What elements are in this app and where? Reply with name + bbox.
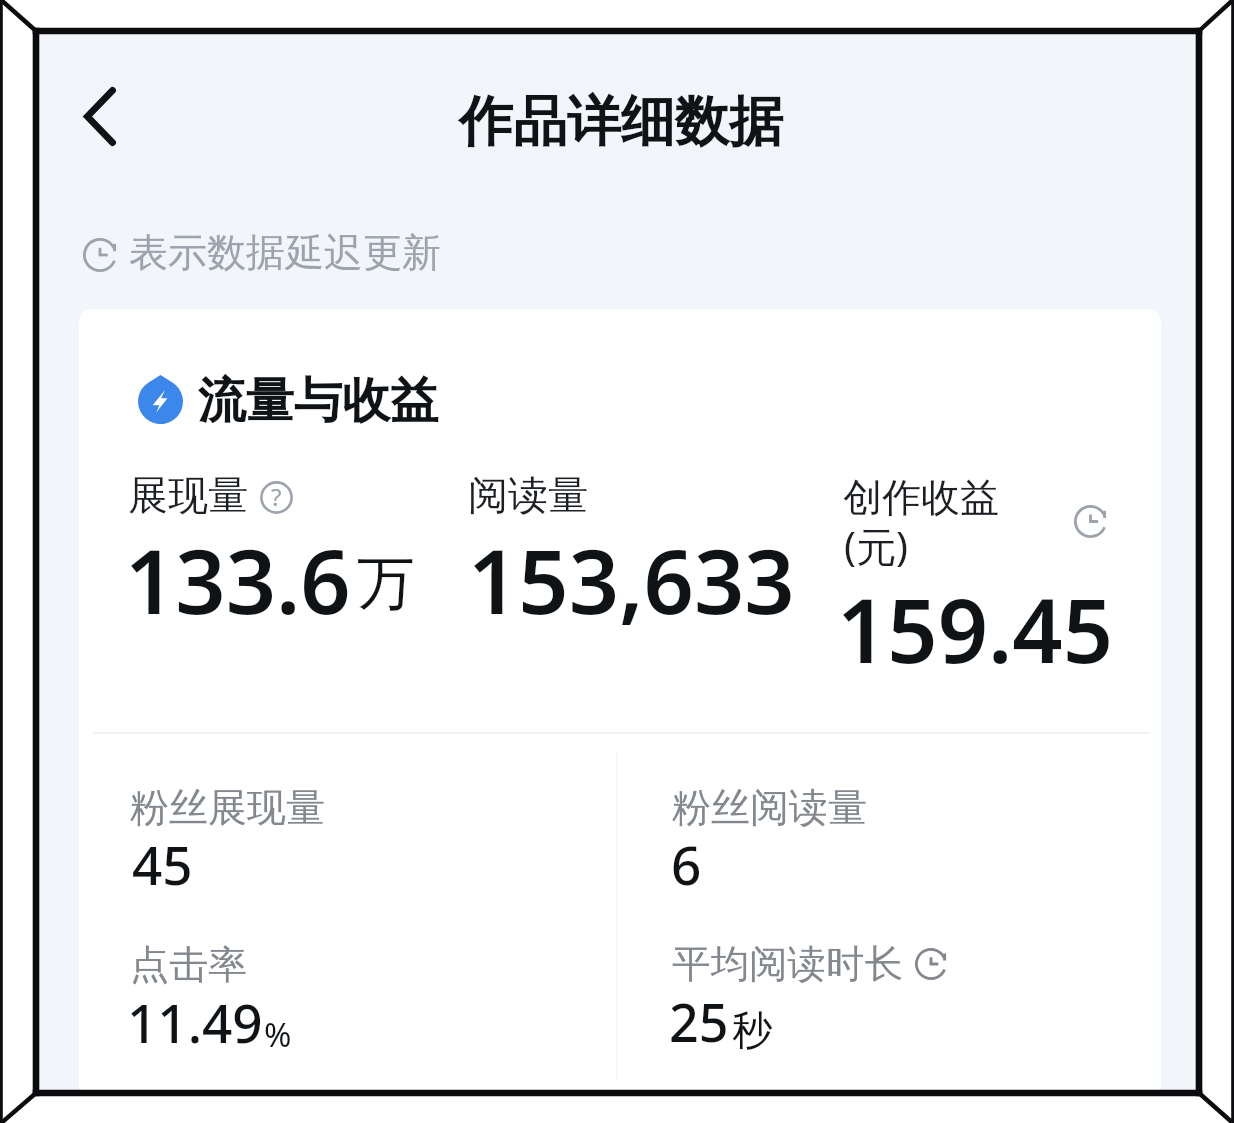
staticText: 159.45 bbox=[837, 569, 1113, 689]
button[interactable]: 粉丝阅读量 6 bbox=[633, 762, 1143, 907]
staticText: 创作收益 bbox=[843, 473, 999, 522]
staticText: 阅读量 bbox=[468, 470, 588, 520]
button[interactable]: 阅读量 153,633 bbox=[440, 460, 820, 630]
staticText: (元) bbox=[844, 518, 908, 573]
staticText: 粉丝展现量 bbox=[130, 783, 325, 832]
button[interactable]: 粉丝展现量 45 bbox=[93, 762, 603, 907]
staticText: % bbox=[264, 1012, 292, 1057]
button[interactable]: 创作收益 159.45 元 bbox=[825, 460, 1145, 675]
staticText: 平均阅读时长 bbox=[672, 940, 903, 989]
staticText: 133.6 bbox=[125, 520, 351, 640]
staticText: 45 bbox=[132, 828, 193, 900]
button[interactable]: 点击率 11.49% bbox=[93, 920, 603, 1065]
staticText: 11.49 bbox=[127, 986, 263, 1058]
staticText: 点击率 bbox=[130, 940, 247, 989]
staticText: ? bbox=[271, 480, 282, 513]
staticText: 153,633 bbox=[468, 520, 795, 640]
staticText: 25 bbox=[669, 986, 729, 1057]
staticText: 秒 bbox=[732, 1005, 772, 1055]
staticText: 作品详细数据 bbox=[459, 88, 783, 156]
button[interactable]: Help bbox=[260, 481, 293, 514]
staticText: 流量与收益 bbox=[198, 371, 438, 431]
button[interactable]: 平均阅读时长 25秒 bbox=[633, 920, 1143, 1065]
staticText: 表示数据延迟更新 bbox=[129, 228, 441, 277]
staticText: 粉丝阅读量 bbox=[672, 783, 867, 832]
staticText: 万 bbox=[357, 547, 415, 620]
staticText: 6 bbox=[671, 828, 702, 900]
staticText: 展现量 bbox=[128, 470, 248, 520]
button[interactable]: 展现量 133.6万 bbox=[93, 460, 438, 630]
button[interactable]: Back bbox=[46, 63, 154, 170]
